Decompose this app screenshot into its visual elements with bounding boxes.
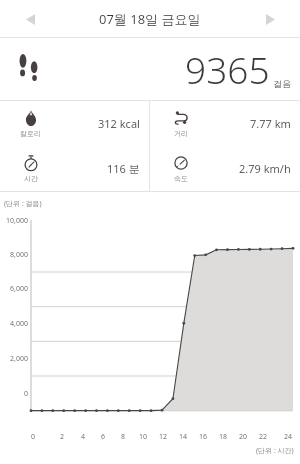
- button[interactable]: Previous day: [12, 1, 48, 37]
- staticText: 2,000: [0, 354, 28, 364]
- staticText: 0: [0, 389, 28, 399]
- button[interactable]: 속도: [150, 146, 300, 191]
- staticText: 4: [81, 432, 86, 442]
- staticText: 312 kcal: [98, 116, 140, 131]
- staticText: 10,000: [0, 216, 28, 226]
- staticText: 116 분: [107, 161, 140, 176]
- button[interactable]: 시간: [0, 146, 149, 191]
- button[interactable]: 칼로리: [0, 101, 149, 146]
- staticText: 22: [259, 432, 268, 442]
- staticText: 14: [179, 432, 188, 442]
- staticText: 칼로리: [20, 129, 41, 138]
- staticText: 2.79 km/h: [239, 161, 291, 176]
- staticText: 8,000: [0, 250, 28, 260]
- staticText: 4,000: [0, 319, 28, 329]
- staticText: 24: [284, 432, 293, 442]
- button[interactable]: 거리: [150, 101, 300, 146]
- staticText: 16: [199, 432, 208, 442]
- staticText: 20: [239, 432, 248, 442]
- staticText: (단위 : 시간): [256, 446, 294, 456]
- staticText: 18: [219, 432, 228, 442]
- button[interactable]: Next day: [252, 1, 288, 37]
- staticText: 걸음: [273, 78, 291, 89]
- staticText: 0: [31, 432, 36, 442]
- button[interactable]: 9365: [0, 38, 300, 100]
- staticText: 속도: [174, 174, 188, 183]
- staticText: 12: [159, 432, 168, 442]
- staticText: 거리: [174, 129, 188, 138]
- staticText: 10: [139, 432, 148, 442]
- staticText: 9365: [185, 44, 270, 94]
- staticText: (단위 : 걸음): [4, 199, 42, 209]
- staticText: 8: [121, 432, 126, 442]
- staticText: 시간: [24, 174, 38, 183]
- staticText: 7.77 km: [250, 116, 291, 131]
- staticText: 2: [60, 432, 65, 442]
- staticText: 6: [101, 432, 106, 442]
- staticText: 07월 18일 금요일: [99, 10, 201, 28]
- staticText: 6,000: [0, 284, 28, 294]
